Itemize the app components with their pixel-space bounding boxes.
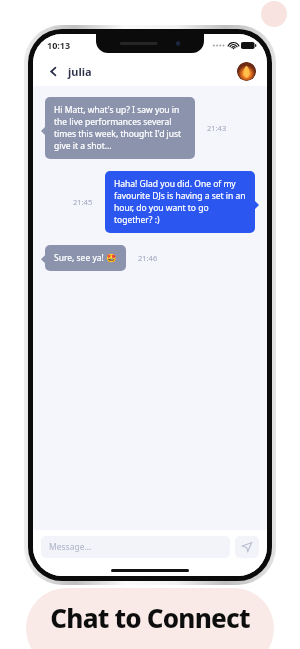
button[interactable]: julia <box>68 64 92 79</box>
button[interactable]: Message... <box>41 536 230 558</box>
button[interactable]: Profile <box>237 62 256 81</box>
staticText: Haha! Glad you did. One of my favourite … <box>114 178 246 226</box>
button[interactable]: Back <box>44 62 62 80</box>
staticText: Chat to Connect <box>50 600 250 635</box>
button[interactable]: Send <box>235 536 259 558</box>
button[interactable]: Hi Matt, what's up? I saw you in the liv… <box>45 97 195 159</box>
staticText: Sure, see ya! 🤩 <box>54 252 117 264</box>
staticText: 21:46 <box>138 253 158 263</box>
staticText: 21:43 <box>207 123 227 133</box>
staticText: Hi Matt, what's up? I saw you in the liv… <box>54 104 186 152</box>
staticText: 21:45 <box>73 197 93 207</box>
staticText: Message... <box>49 541 92 553</box>
button[interactable]: Haha! Glad you did. One of my favourite … <box>105 171 255 233</box>
staticText: 10:13 <box>47 39 71 51</box>
button[interactable]: Sure, see ya! 🤩 <box>45 245 126 271</box>
